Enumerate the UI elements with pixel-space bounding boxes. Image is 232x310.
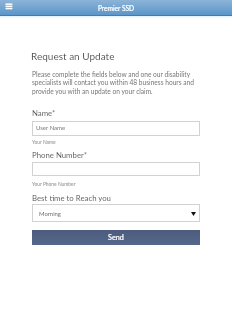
button[interactable]: Send: [32, 230, 200, 245]
staticText: Your Name: [32, 139, 56, 145]
staticText: Best time to Reach you: [32, 193, 111, 202]
staticText: Your Phone Number: [32, 181, 76, 187]
button[interactable]: [32, 162, 200, 176]
staticText: Name*: [32, 108, 56, 117]
staticText: Premier SSD: [0, 4, 232, 12]
staticText: Phone Number*: [32, 150, 88, 159]
staticText: Please complete the fields below and one…: [32, 70, 198, 96]
button[interactable]: Morning: [32, 204, 200, 222]
button[interactable]: Open navigation menu: [4, 2, 15, 11]
button[interactable]: User Name: [32, 121, 200, 136]
staticText: Morning: [39, 210, 61, 217]
staticText: Request an Update: [31, 50, 115, 62]
staticText: Send: [108, 233, 124, 242]
staticText: User Name: [36, 124, 66, 131]
